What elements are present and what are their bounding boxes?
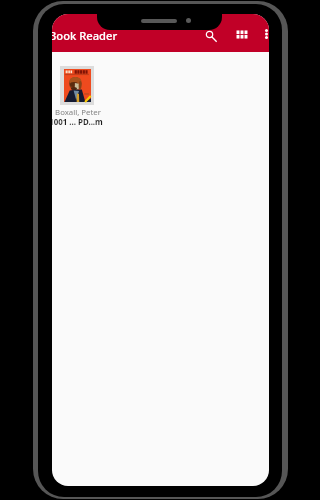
button[interactable]: More options bbox=[260, 25, 269, 43]
button[interactable]: Grid view bbox=[231, 25, 252, 43]
staticText: 1001 ... PD...m bbox=[52, 117, 103, 128]
button[interactable]: Search bbox=[201, 27, 222, 45]
button[interactable]: Boxall, Peter bbox=[52, 52, 103, 130]
staticText: Book Reader bbox=[52, 28, 118, 43]
staticText: Boxall, Peter bbox=[55, 107, 101, 118]
